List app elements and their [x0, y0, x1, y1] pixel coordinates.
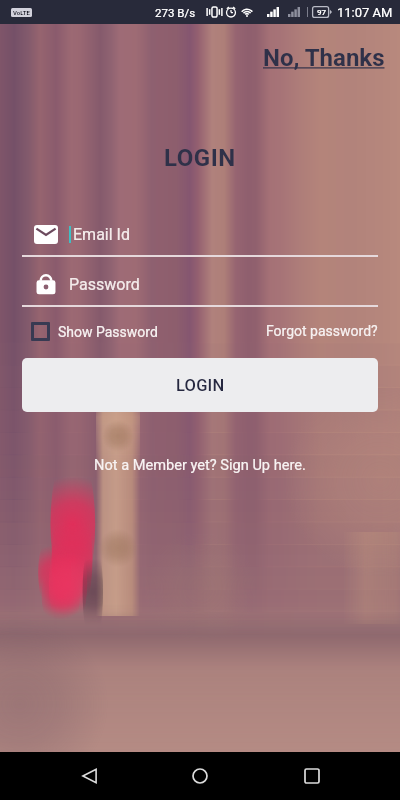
staticText: LOGIN [176, 376, 225, 395]
staticText: Not a Member yet? Sign Up here. [94, 456, 306, 473]
button[interactable]: Back [66, 753, 112, 799]
staticText: No, Thanks [263, 44, 385, 72]
staticText: 11:07 AM [337, 5, 393, 20]
staticText: 273 B/s [155, 6, 196, 19]
staticText: Password [69, 275, 140, 294]
button[interactable]: Not a Member yet? Sign Up here. [92, 454, 308, 475]
button[interactable]: No, Thanks [261, 42, 387, 74]
button[interactable]: Recents [289, 753, 335, 799]
staticText: Show Password [58, 324, 158, 340]
button[interactable]: Home [177, 753, 223, 799]
staticText: Email Id [73, 225, 130, 244]
staticText: Forgot password? [266, 323, 378, 339]
button[interactable]: Show Password [22, 319, 158, 344]
button[interactable]: LOGIN [22, 358, 378, 412]
button[interactable]: Forgot password? [266, 320, 378, 342]
staticText: VoLTE [13, 9, 30, 16]
staticText: 97 [317, 8, 327, 17]
staticText: LOGIN [164, 144, 236, 172]
